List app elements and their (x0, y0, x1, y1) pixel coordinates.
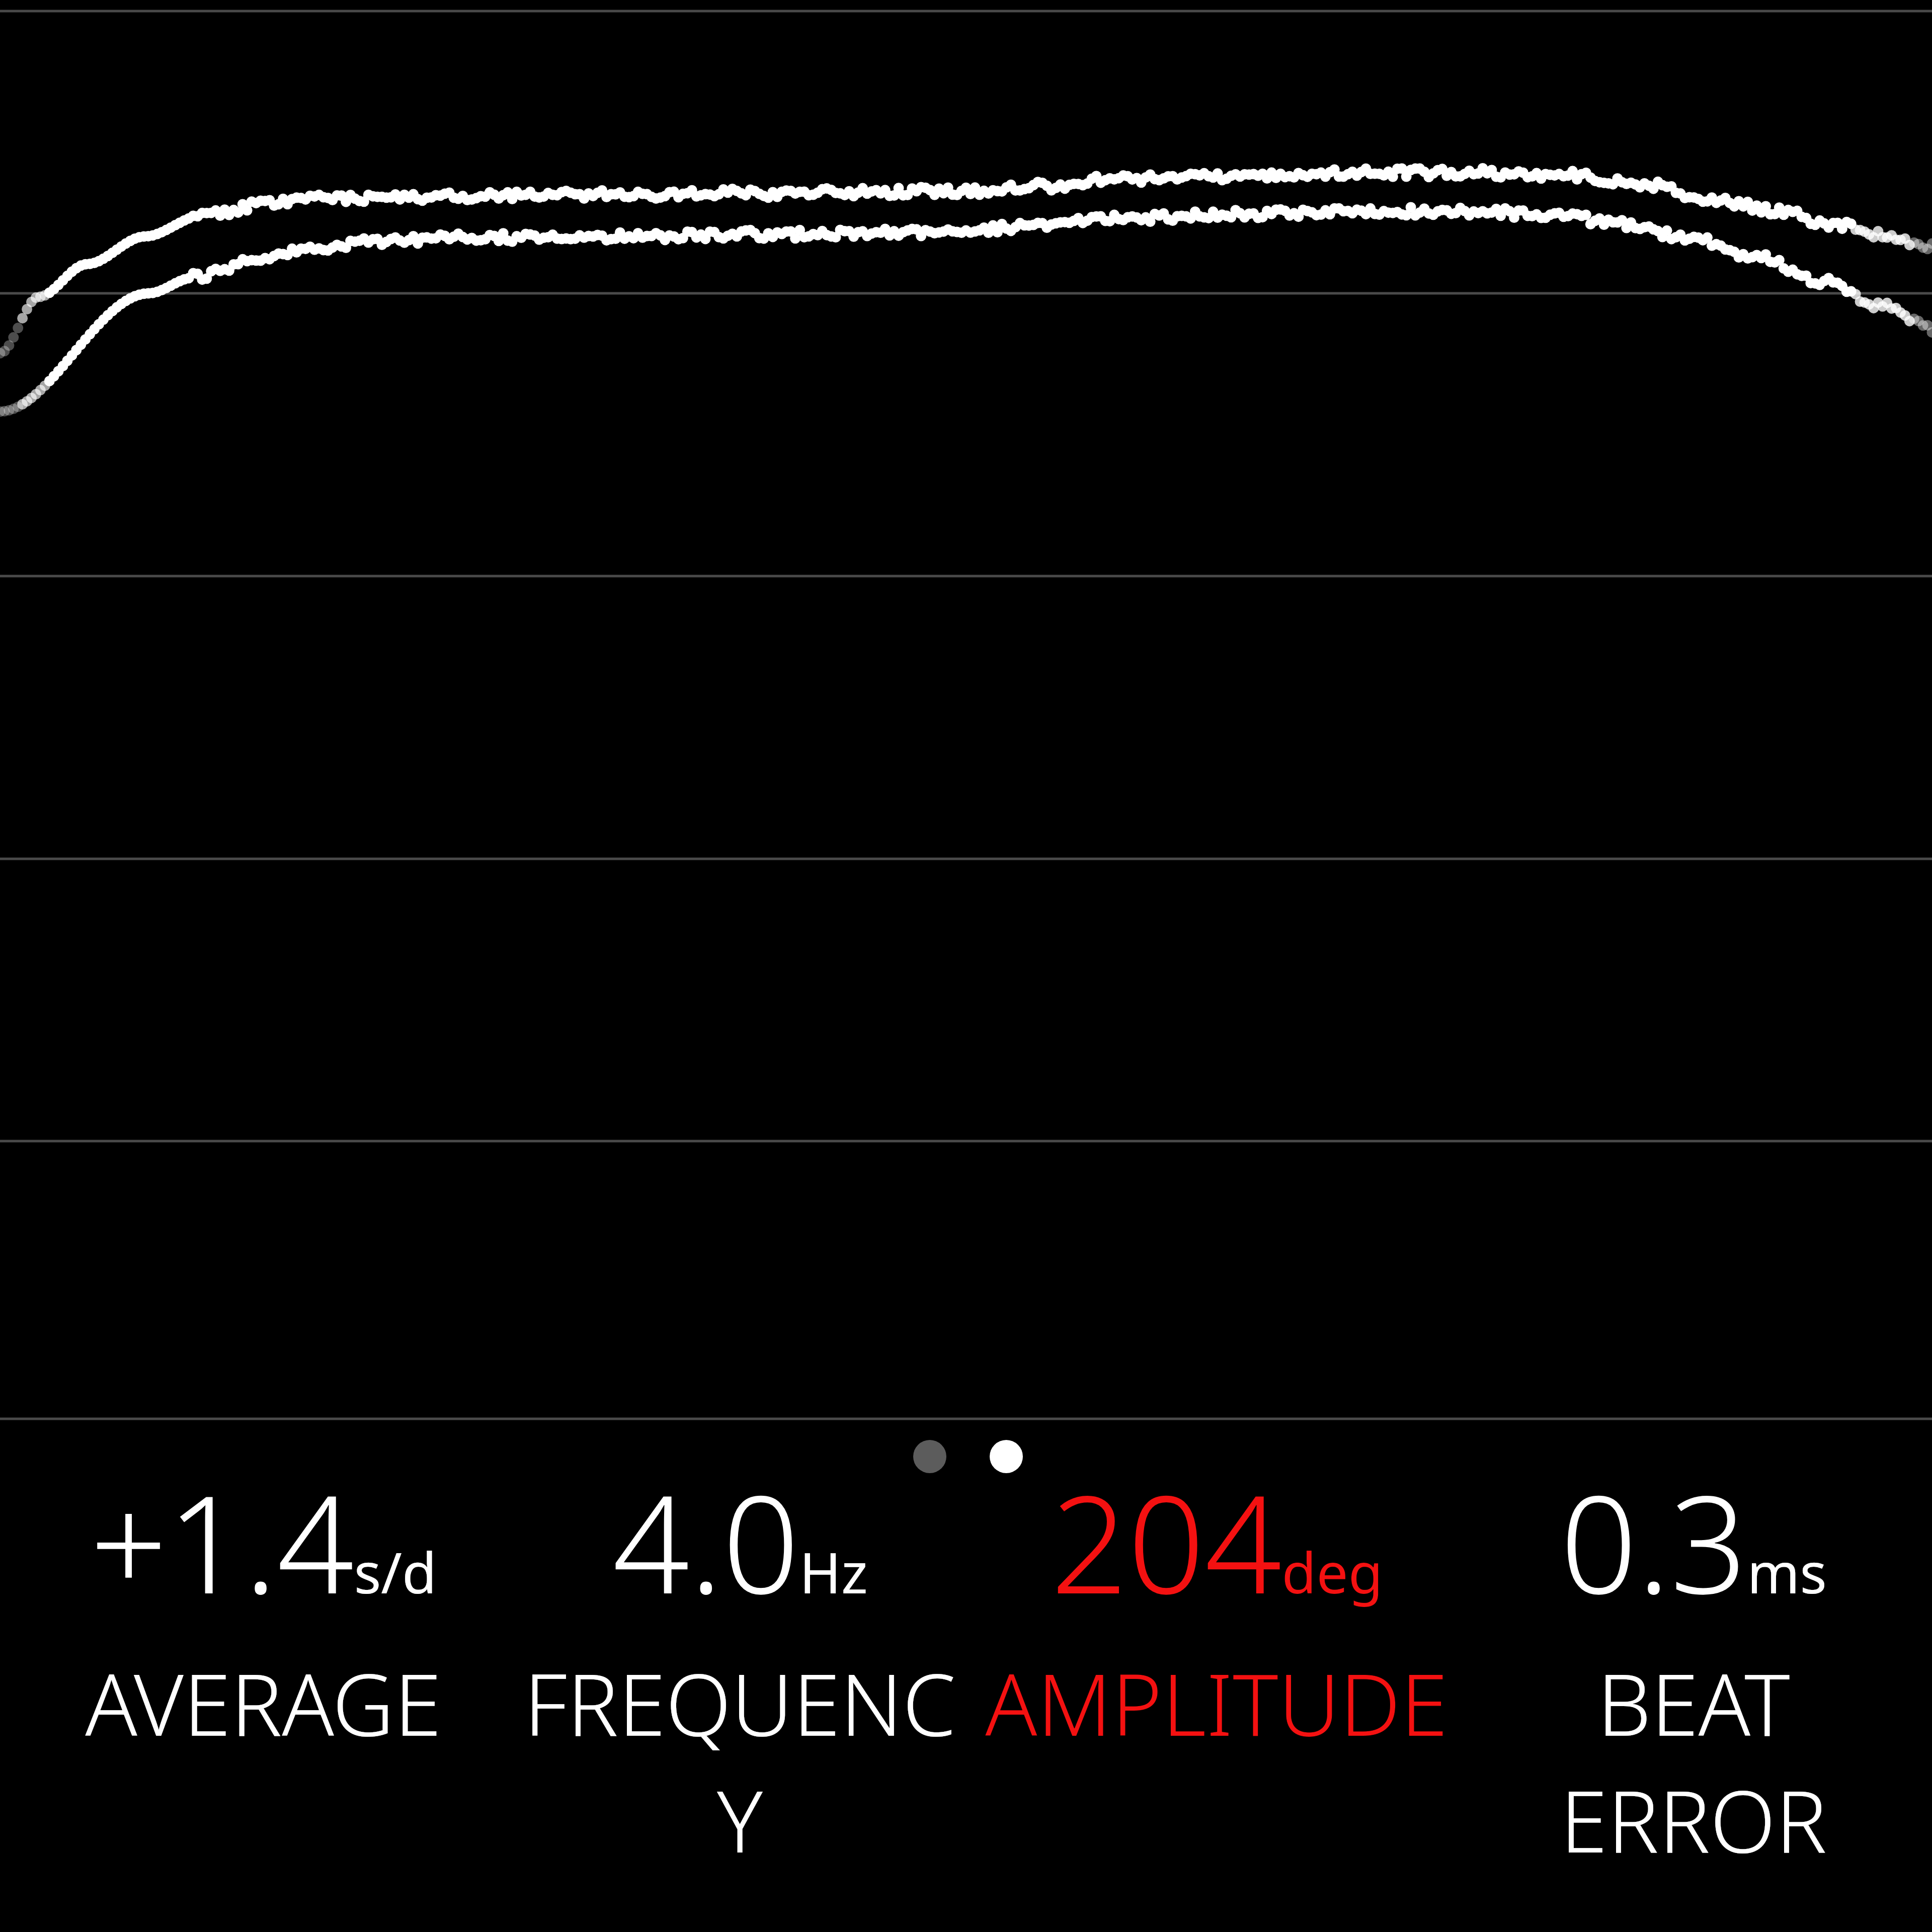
staticText: 0.3ms (1560, 1450, 1827, 1633)
staticText: FREQUENCY (502, 1644, 978, 1878)
staticText: +1.4s/d (90, 1450, 437, 1633)
staticText: AMPLITUDE (985, 1644, 1448, 1761)
button[interactable]: 204deg (978, 1450, 1455, 1761)
staticText: 204deg (1051, 1450, 1383, 1633)
button[interactable]: Page 2 of 2 (913, 1440, 1023, 1473)
staticText: 4.0Hz (612, 1450, 868, 1633)
button[interactable]: 4.0Hz (502, 1450, 978, 1878)
button[interactable]: 0.3ms (1455, 1450, 1932, 1878)
button[interactable]: +1.4s/d (25, 1450, 502, 1761)
staticText: AVERAGE (85, 1644, 442, 1761)
staticText: BEAT ERROR (1455, 1644, 1932, 1878)
